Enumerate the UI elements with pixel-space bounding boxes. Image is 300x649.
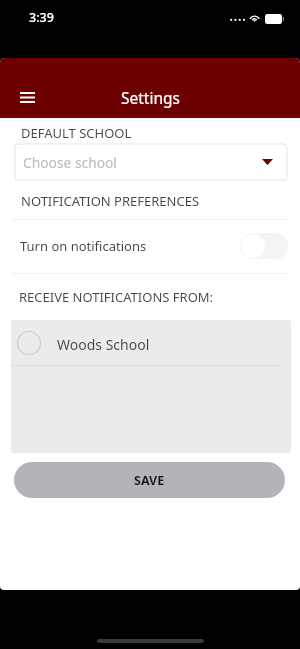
- button[interactable]: Turn on notifications: [0, 219, 300, 272]
- staticText: NOTIFICATION PREFERENCES: [21, 192, 200, 210]
- staticText: 3:39: [29, 9, 54, 26]
- staticText: Choose school: [23, 153, 117, 172]
- staticText: Woods School: [57, 335, 150, 354]
- button[interactable]: Choose school dropdown: [15, 144, 287, 180]
- staticText: Turn on notifications: [20, 237, 147, 255]
- button[interactable]: Woods School: [11, 320, 291, 365]
- button[interactable]: SAVE: [14, 462, 285, 498]
- staticText: Settings: [121, 87, 180, 108]
- button[interactable]: Turn on notifications toggle, off: [240, 233, 288, 259]
- button[interactable]: Open navigation menu: [5, 84, 49, 110]
- staticText: RECEIVE NOTIFICATIONS FROM:: [19, 288, 214, 306]
- staticText: DEFAULT SCHOOL: [21, 124, 132, 142]
- staticText: SAVE: [134, 472, 165, 489]
